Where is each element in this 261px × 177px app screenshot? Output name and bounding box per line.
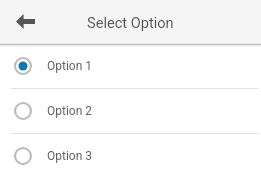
- staticText: Select Option: [87, 14, 174, 31]
- button[interactable]: Back: [8, 4, 42, 38]
- button[interactable]: Option 2: [0, 89, 261, 133]
- staticText: Option 3: [47, 149, 93, 163]
- button[interactable]: Option 1: [0, 44, 261, 88]
- staticText: Option 2: [47, 104, 93, 118]
- staticText: Option 1: [47, 59, 93, 73]
- button[interactable]: Option 3: [0, 134, 261, 177]
